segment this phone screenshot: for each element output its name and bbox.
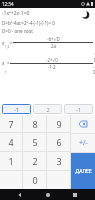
button[interactable]: 3 [47,152,70,170]
staticText: -1·2 [48,64,56,70]
staticText: 8 [32,118,38,130]
staticText: 2a [51,43,56,49]
staticText: 1 [5,71,7,75]
button[interactable]: Plus minus [71,134,95,152]
staticText: 9 [56,118,62,130]
staticText: 2 [46,106,50,113]
staticText: -1x²+2x-1=0 [2,10,30,17]
staticText: 6 [56,136,62,148]
button[interactable]: 7 [0,115,22,132]
staticText: +/- [79,138,88,148]
staticText: D=b²-4ac=2²-4·(-1)·(-1)= 0 [2,20,55,26]
staticText: 1 [8,155,14,167]
staticText: -b+√D [47,36,60,42]
button[interactable]: 6 [47,133,70,151]
staticText: = [10,40,13,46]
staticText: -2+√0 [46,57,58,63]
staticText: 3 [56,155,62,167]
staticText: = [7,60,10,66]
staticText: ДАЛЕЕ [75,168,92,175]
button[interactable]: 2 [33,104,62,114]
staticText: x [2,60,5,66]
button[interactable]: 0 [23,171,46,189]
button[interactable]: 1 [0,152,22,170]
button[interactable]: Recents [68,189,82,200]
button[interactable]: Toggle dark theme [80,9,92,21]
staticText: 4 [8,136,14,148]
button[interactable]: 8 [23,115,46,132]
staticText: 12:34 [2,1,14,7]
staticText: 7 [8,118,14,130]
staticText: 5 [32,136,38,148]
staticText: 1,2 [5,45,10,49]
button[interactable]: 4 [0,133,22,151]
button[interactable]: -1 [2,104,31,114]
button[interactable]: Backspace [71,115,95,133]
button[interactable]: -1 [64,104,93,114]
button[interactable]: Back [13,189,27,200]
staticText: D=0 - one root [2,28,33,34]
staticText: -1 [14,106,19,113]
staticText: 0 [32,174,38,186]
button[interactable]: ДАЛЕЕ [71,153,95,189]
button[interactable]: 2 [23,152,46,170]
staticText: 2 [32,155,38,167]
staticText: -1 [76,106,81,113]
button[interactable]: 5 [23,133,46,151]
button[interactable]: Home [41,189,55,200]
button[interactable]: 9 [47,115,70,132]
staticText: x [2,40,5,46]
